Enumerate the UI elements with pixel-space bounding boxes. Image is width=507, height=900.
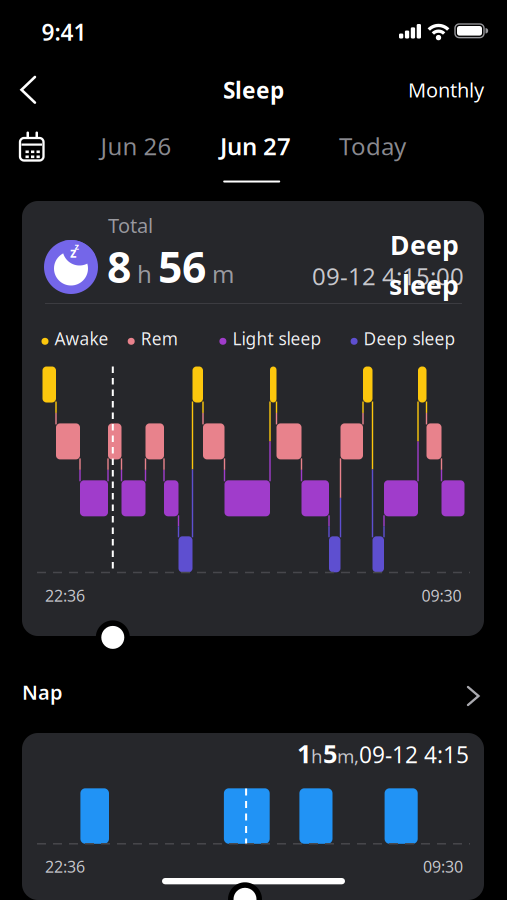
staticText: Sleep	[223, 75, 284, 105]
staticText: Nap	[22, 679, 63, 705]
button[interactable]: Back	[13, 71, 43, 109]
button[interactable]: Nap chart time slider	[228, 882, 262, 900]
button[interactable]: Jun 27	[195, 130, 315, 162]
button[interactable]: Jun 26	[76, 130, 196, 162]
staticText: 22:36	[45, 585, 85, 606]
staticText: 9:41	[41, 17, 86, 47]
staticText: h	[137, 258, 152, 289]
staticText: Deep sleep	[364, 327, 456, 350]
button[interactable]: Monthly	[354, 76, 484, 103]
button[interactable]: Calendar	[16, 127, 47, 164]
staticText: Total	[108, 212, 153, 239]
staticText: 8	[107, 238, 131, 295]
staticText: sleep	[389, 267, 459, 302]
button[interactable]: Today	[312, 130, 432, 162]
staticText: Awake	[54, 327, 108, 350]
staticText: z	[74, 240, 79, 252]
staticText: 09-12 4:15	[359, 739, 469, 769]
staticText: 56	[158, 238, 206, 295]
staticText: Rem	[141, 327, 178, 350]
button[interactable]: Sleep chart time slider	[96, 620, 130, 654]
staticText: Light sleep	[232, 327, 321, 350]
staticText: m	[212, 258, 234, 289]
staticText: Monthly	[408, 76, 484, 103]
staticText: Today	[339, 130, 406, 162]
staticText: m,	[337, 744, 359, 768]
staticText: 5	[323, 737, 337, 770]
staticText: 09:30	[421, 585, 461, 606]
staticText: h	[311, 744, 323, 768]
staticText: 09-12 4:15:00	[312, 260, 464, 292]
staticText: 09:30	[423, 856, 463, 877]
staticText: z	[70, 244, 77, 261]
staticText: 22:36	[45, 856, 85, 877]
staticText: Jun 26	[100, 130, 171, 162]
staticText: 1	[297, 737, 311, 770]
staticText: Jun 27	[220, 130, 291, 162]
button[interactable]: Nap	[24, 681, 482, 709]
staticText: Deep	[390, 227, 459, 262]
